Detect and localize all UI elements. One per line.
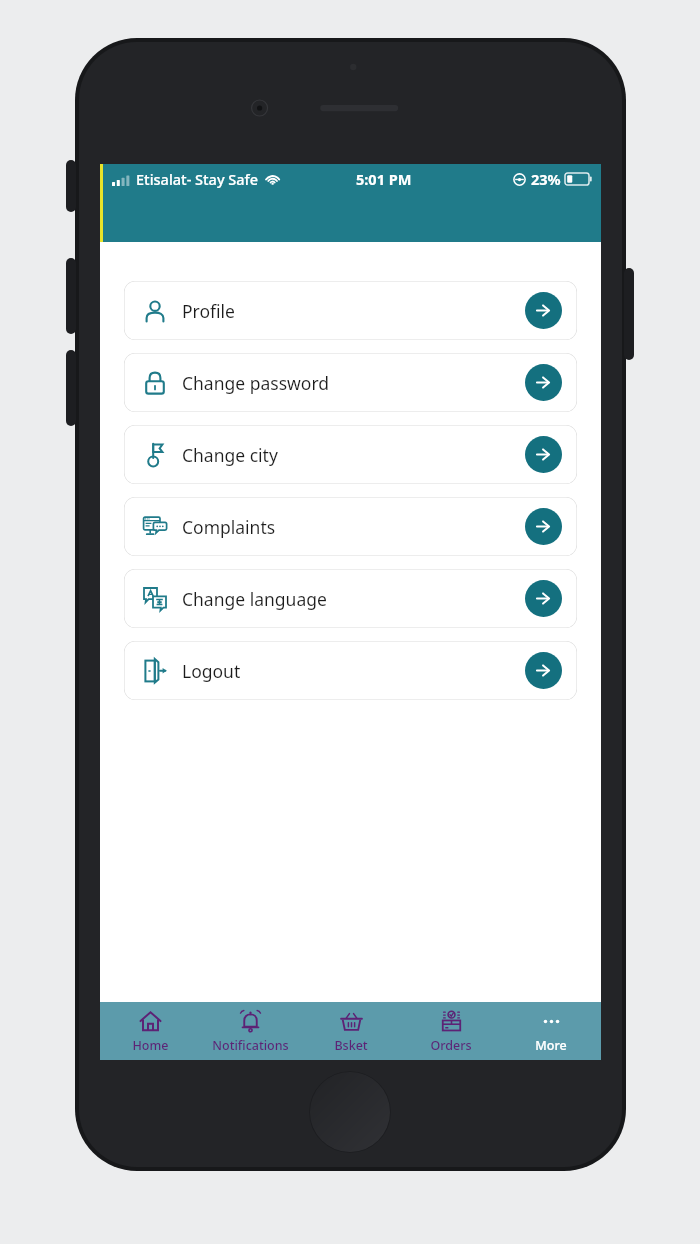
button[interactable]: Open Logout [525,652,562,689]
staticText: Profile [182,299,235,323]
staticText: 5:01 PM [356,169,412,189]
staticText: Notifications [212,1037,289,1054]
staticText: More [535,1037,567,1054]
staticText: Complaints [182,515,276,539]
button[interactable]: Change language [124,569,577,628]
staticText: 23% [531,169,561,189]
button[interactable]: Complaints [124,497,577,556]
staticText: Logout [182,659,241,683]
button[interactable]: Profile [124,281,577,340]
button[interactable]: Change password [124,353,577,412]
staticText: Bsket [334,1037,368,1054]
button[interactable]: More [501,1002,601,1060]
button[interactable]: Open Change city [525,436,562,473]
button[interactable]: Open Change language [525,580,562,617]
button[interactable]: Notifications [200,1002,300,1060]
button[interactable]: Logout [124,641,577,700]
staticText: Orders [430,1037,472,1054]
staticText: Change language [182,587,327,611]
button[interactable]: Open Change password [525,364,562,401]
button[interactable]: Open Profile [525,292,562,329]
staticText: Home [132,1037,169,1054]
button[interactable]: Bsket [301,1002,401,1060]
staticText: Change city [182,443,278,467]
staticText: Etisalat- Stay Safe [136,169,259,189]
staticText: Change password [182,371,330,395]
button[interactable]: Change city [124,425,577,484]
button[interactable]: Open Complaints [525,508,562,545]
button[interactable]: Orders [401,1002,501,1060]
button[interactable]: Home [100,1002,200,1060]
